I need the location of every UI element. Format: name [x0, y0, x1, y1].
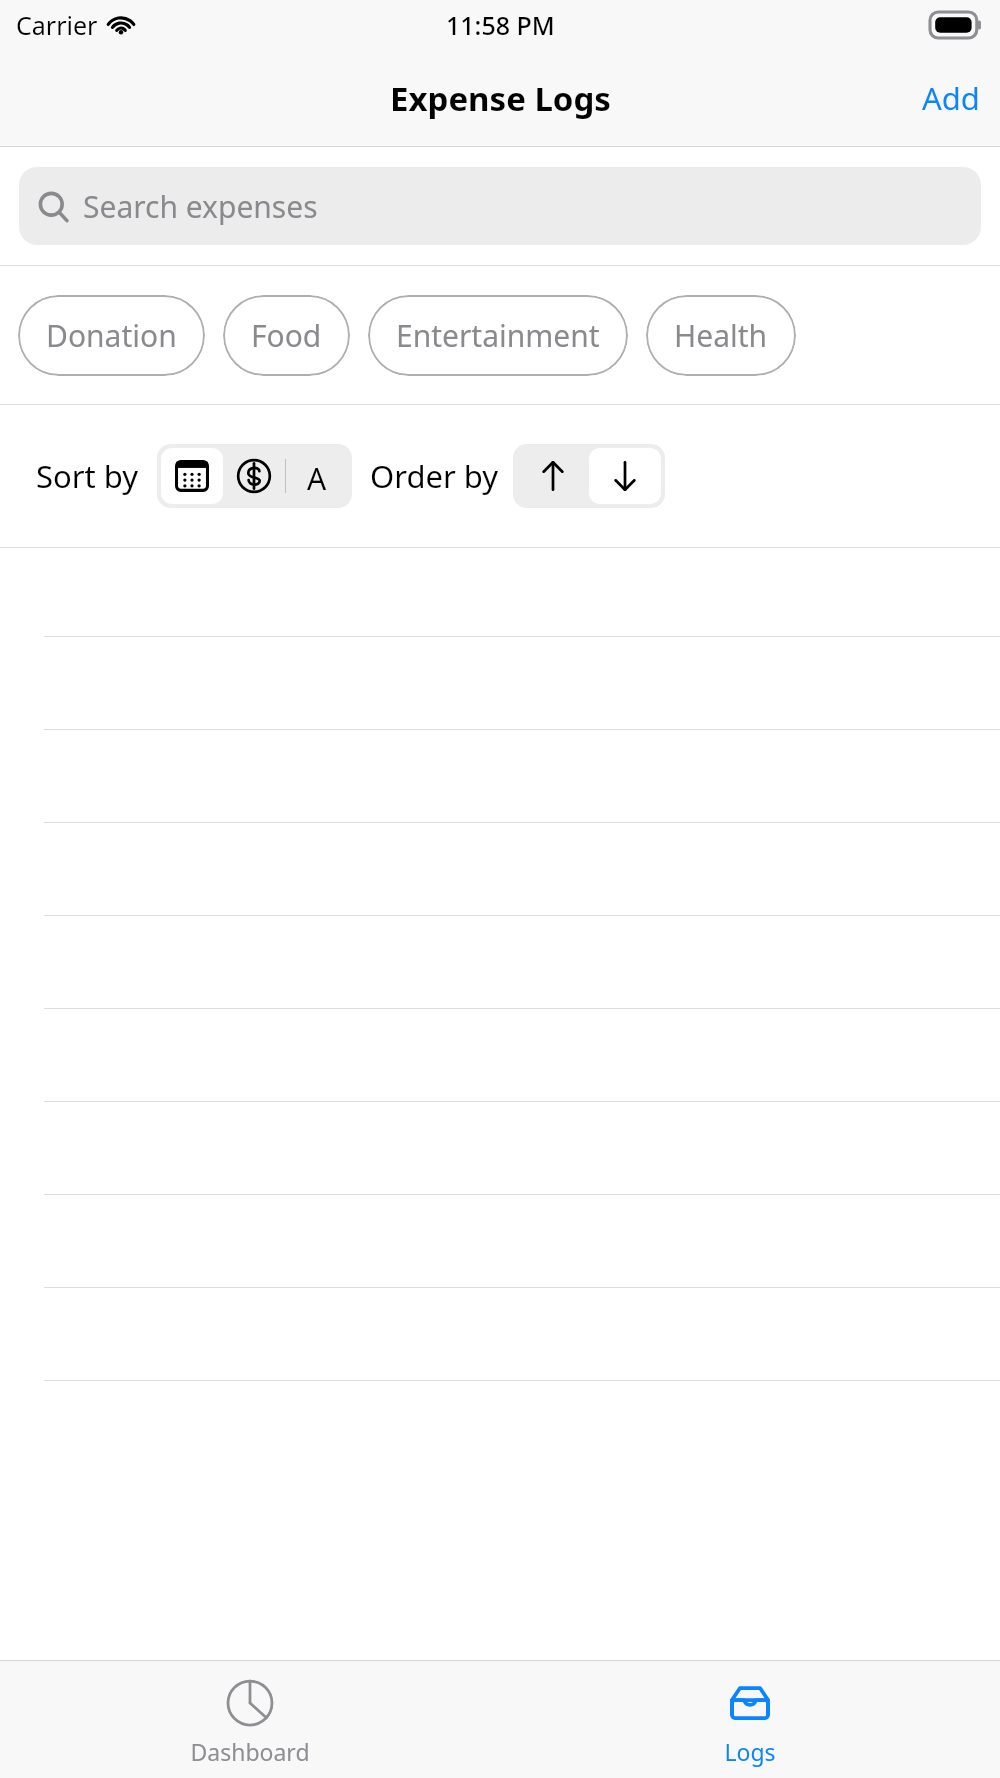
button[interactable]: Sort option	[161, 448, 223, 504]
staticText: Carrier	[16, 8, 98, 42]
button[interactable]: Health	[646, 295, 796, 376]
button[interactable]: Entertainment	[368, 295, 628, 376]
button[interactable]: Add	[902, 67, 1000, 129]
staticText: 11:58 PM	[446, 8, 555, 42]
button[interactable]: Food	[223, 295, 350, 376]
button[interactable]: Search expenses	[19, 167, 981, 245]
staticText: A	[307, 458, 327, 494]
other: Sort option	[236, 458, 272, 494]
staticText: Add	[922, 77, 980, 119]
other: Sort option	[607, 458, 643, 494]
button[interactable]: Donation	[18, 295, 205, 376]
staticText: Logs	[724, 1736, 776, 1767]
staticText: Food	[251, 315, 322, 356]
button[interactable]: Dashboard	[0, 1661, 500, 1778]
staticText: Dashboard	[190, 1736, 310, 1767]
staticText: Donation	[46, 315, 177, 356]
button[interactable]: Sort option	[517, 448, 589, 504]
button[interactable]: Sort option	[589, 448, 661, 504]
staticText: Entertainment	[396, 315, 600, 356]
staticText: Search expenses	[83, 186, 318, 227]
other: Sort option	[535, 458, 571, 494]
button[interactable]: Sort option	[223, 448, 285, 504]
button[interactable]: Logs	[500, 1661, 1000, 1778]
other: Sort option	[299, 458, 335, 494]
button[interactable]: Sort option	[286, 448, 348, 504]
staticText: Order by	[370, 455, 499, 497]
staticText: Health	[674, 315, 768, 356]
staticText: Sort by	[36, 455, 139, 497]
other: Sort option	[174, 458, 210, 494]
staticText: Expense Logs	[390, 76, 611, 121]
